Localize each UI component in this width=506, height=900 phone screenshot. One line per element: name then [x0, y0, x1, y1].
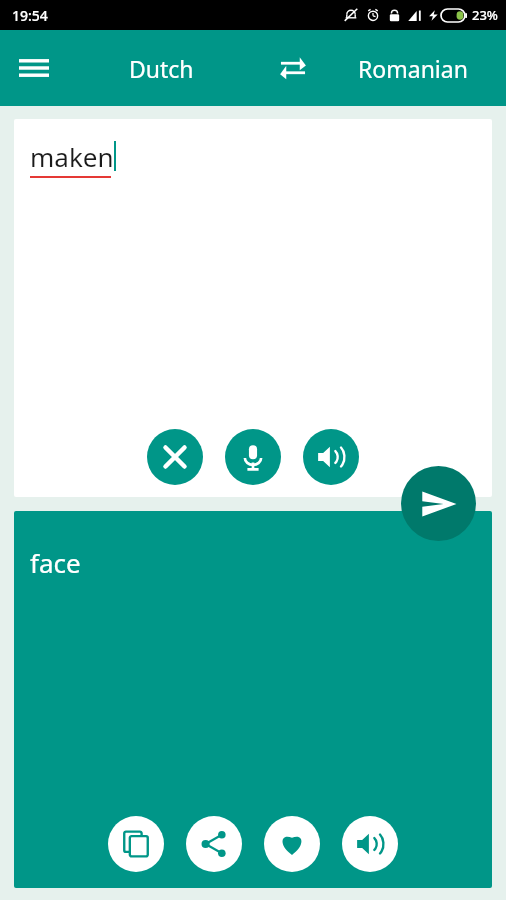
staticText: maken — [30, 139, 114, 174]
button[interactable]: Open menu — [10, 44, 58, 92]
button[interactable]: Speak translation — [342, 816, 398, 872]
button[interactable]: Dutch — [96, 40, 226, 96]
staticText: Dutch — [129, 53, 194, 84]
staticText: 23% — [472, 6, 498, 24]
button[interactable]: Swap languages — [267, 42, 319, 94]
button[interactable]: Clear — [147, 429, 203, 485]
button[interactable]: Speak source text — [303, 429, 359, 485]
button[interactable]: Add to favorites — [264, 816, 320, 872]
button[interactable]: Voice input — [225, 429, 281, 485]
button[interactable]: Copy — [108, 816, 164, 872]
staticText: 19:54 — [12, 6, 48, 25]
button[interactable]: Romanian — [328, 40, 498, 96]
staticText: face — [30, 545, 81, 580]
staticText: Romanian — [358, 53, 468, 84]
button[interactable]: Share — [186, 816, 242, 872]
button[interactable]: Translate — [401, 466, 476, 541]
